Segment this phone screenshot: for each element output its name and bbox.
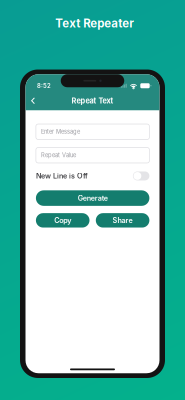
staticText: Share <box>113 216 133 225</box>
button[interactable]: New line toggle <box>133 171 149 180</box>
staticText: Text Repeater <box>55 16 134 30</box>
staticText: Repeat Value <box>41 152 76 159</box>
button[interactable]: Share <box>96 213 149 227</box>
button[interactable]: Copy <box>36 213 89 227</box>
button[interactable]: Back <box>25 94 41 107</box>
staticText: New Line is Off <box>36 172 88 180</box>
button[interactable]: Generate <box>36 190 149 206</box>
staticText: Copy <box>54 216 71 225</box>
staticText: 8:52 <box>37 82 51 89</box>
staticText: Enter Message <box>41 128 80 135</box>
staticText: Repeat Text <box>71 96 113 105</box>
staticText: Generate <box>78 194 108 202</box>
